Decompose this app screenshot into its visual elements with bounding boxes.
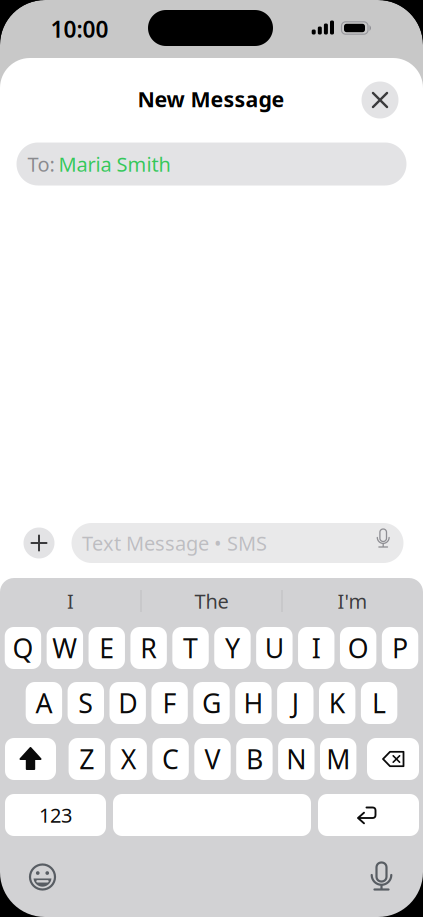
staticText: X xyxy=(121,741,137,777)
button[interactable]: F xyxy=(151,682,188,724)
button[interactable]: D xyxy=(109,682,146,724)
staticText: E xyxy=(99,630,114,666)
staticText: L xyxy=(372,685,386,721)
staticText: To: xyxy=(27,151,54,177)
staticText: I'm xyxy=(337,588,367,614)
button[interactable]: 123 xyxy=(5,794,106,836)
staticText: New Message xyxy=(137,85,284,113)
button[interactable]: To: xyxy=(16,142,406,185)
staticText: Text Message • SMS xyxy=(82,530,267,556)
button[interactable]: Text Message • SMS xyxy=(71,523,403,563)
staticText: H xyxy=(243,685,263,721)
button[interactable]: Shift xyxy=(5,738,56,780)
staticText: G xyxy=(202,685,221,721)
button[interactable]: W xyxy=(47,627,83,669)
button[interactable]: T xyxy=(172,627,209,669)
staticText: T xyxy=(183,630,198,666)
button[interactable]: Emoji xyxy=(28,862,57,891)
staticText: V xyxy=(204,741,220,777)
staticText: K xyxy=(329,685,346,721)
button[interactable]: C xyxy=(152,738,189,780)
button[interactable]: Q xyxy=(5,627,41,669)
staticText: W xyxy=(52,630,77,666)
staticText: A xyxy=(35,685,52,721)
staticText: Q xyxy=(12,630,33,666)
staticText: F xyxy=(163,685,177,721)
button[interactable]: I xyxy=(5,581,135,621)
button[interactable]: M xyxy=(320,738,356,780)
staticText: S xyxy=(78,685,93,721)
button[interactable]: Add attachment xyxy=(23,527,54,558)
button[interactable]: U xyxy=(256,627,293,669)
button[interactable]: Z xyxy=(69,738,105,780)
staticText: N xyxy=(286,741,306,777)
staticText: R xyxy=(140,630,157,666)
button[interactable]: G xyxy=(193,682,230,724)
staticText: Maria Smith xyxy=(58,151,170,177)
staticText: J xyxy=(292,685,299,721)
button[interactable]: E xyxy=(89,627,125,669)
button[interactable]: R xyxy=(130,627,167,669)
staticText: M xyxy=(326,741,350,777)
button[interactable]: O xyxy=(340,627,376,669)
staticText: I xyxy=(67,588,74,614)
button[interactable]: Y xyxy=(214,627,251,669)
staticText: C xyxy=(162,741,179,777)
staticText: 123 xyxy=(39,802,72,828)
button[interactable]: B xyxy=(236,738,273,780)
button[interactable]: Return xyxy=(318,794,419,836)
button[interactable]: V xyxy=(194,738,231,780)
button[interactable]: X xyxy=(110,738,147,780)
button[interactable]: J xyxy=(277,682,313,724)
staticText: The xyxy=(194,588,228,614)
button[interactable]: P xyxy=(382,627,418,669)
button[interactable]: I xyxy=(298,627,334,669)
button[interactable]: H xyxy=(235,682,272,724)
button[interactable]: I'm xyxy=(287,581,417,621)
staticText: 10:00 xyxy=(50,14,108,44)
button[interactable]: The xyxy=(146,581,276,621)
staticText: P xyxy=(392,630,408,666)
staticText: I xyxy=(312,630,321,666)
staticText: U xyxy=(265,630,284,666)
button[interactable]: Dictate xyxy=(367,861,396,890)
staticText: B xyxy=(246,741,263,777)
button[interactable]: N xyxy=(278,738,314,780)
button[interactable]: K xyxy=(319,682,355,724)
staticText: O xyxy=(348,630,369,666)
button[interactable]: Close xyxy=(361,81,398,118)
staticText: Y xyxy=(225,630,240,666)
button[interactable]: L xyxy=(361,682,397,724)
button[interactable]: space xyxy=(113,794,311,836)
staticText: Z xyxy=(79,741,94,777)
button[interactable]: A xyxy=(26,682,62,724)
button[interactable]: S xyxy=(68,682,104,724)
button[interactable]: Delete xyxy=(367,738,419,780)
staticText: D xyxy=(118,685,137,721)
